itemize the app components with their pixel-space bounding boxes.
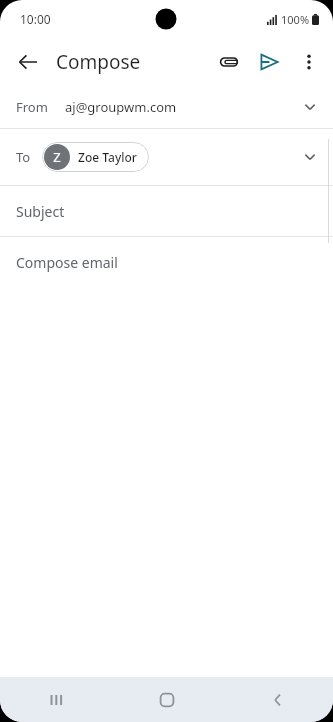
- button[interactable]: Attach file: [209, 42, 249, 82]
- staticText: Compose: [56, 49, 141, 75]
- staticText: Subject: [16, 202, 65, 221]
- button[interactable]: Compose email: [0, 237, 333, 287]
- staticText: Zoe Taylor: [78, 149, 137, 165]
- button[interactable]: To: [0, 129, 333, 185]
- staticText: 10:00: [20, 11, 51, 27]
- button[interactable]: Back: [222, 677, 333, 722]
- button[interactable]: From: [0, 86, 333, 128]
- button[interactable]: Subject: [0, 186, 333, 236]
- staticText: Z: [53, 148, 61, 166]
- button[interactable]: Z: [42, 142, 149, 172]
- staticText: Compose email: [16, 253, 118, 272]
- button[interactable]: Recent apps: [0, 677, 111, 722]
- button[interactable]: Home: [111, 677, 222, 722]
- staticText: From: [16, 98, 48, 116]
- button[interactable]: Send: [249, 42, 289, 82]
- button[interactable]: Back: [8, 42, 48, 82]
- staticText: aj@groupwm.com: [65, 98, 177, 116]
- staticText: To: [16, 148, 31, 166]
- staticText: 100%: [281, 12, 310, 27]
- button[interactable]: More options: [289, 42, 329, 82]
